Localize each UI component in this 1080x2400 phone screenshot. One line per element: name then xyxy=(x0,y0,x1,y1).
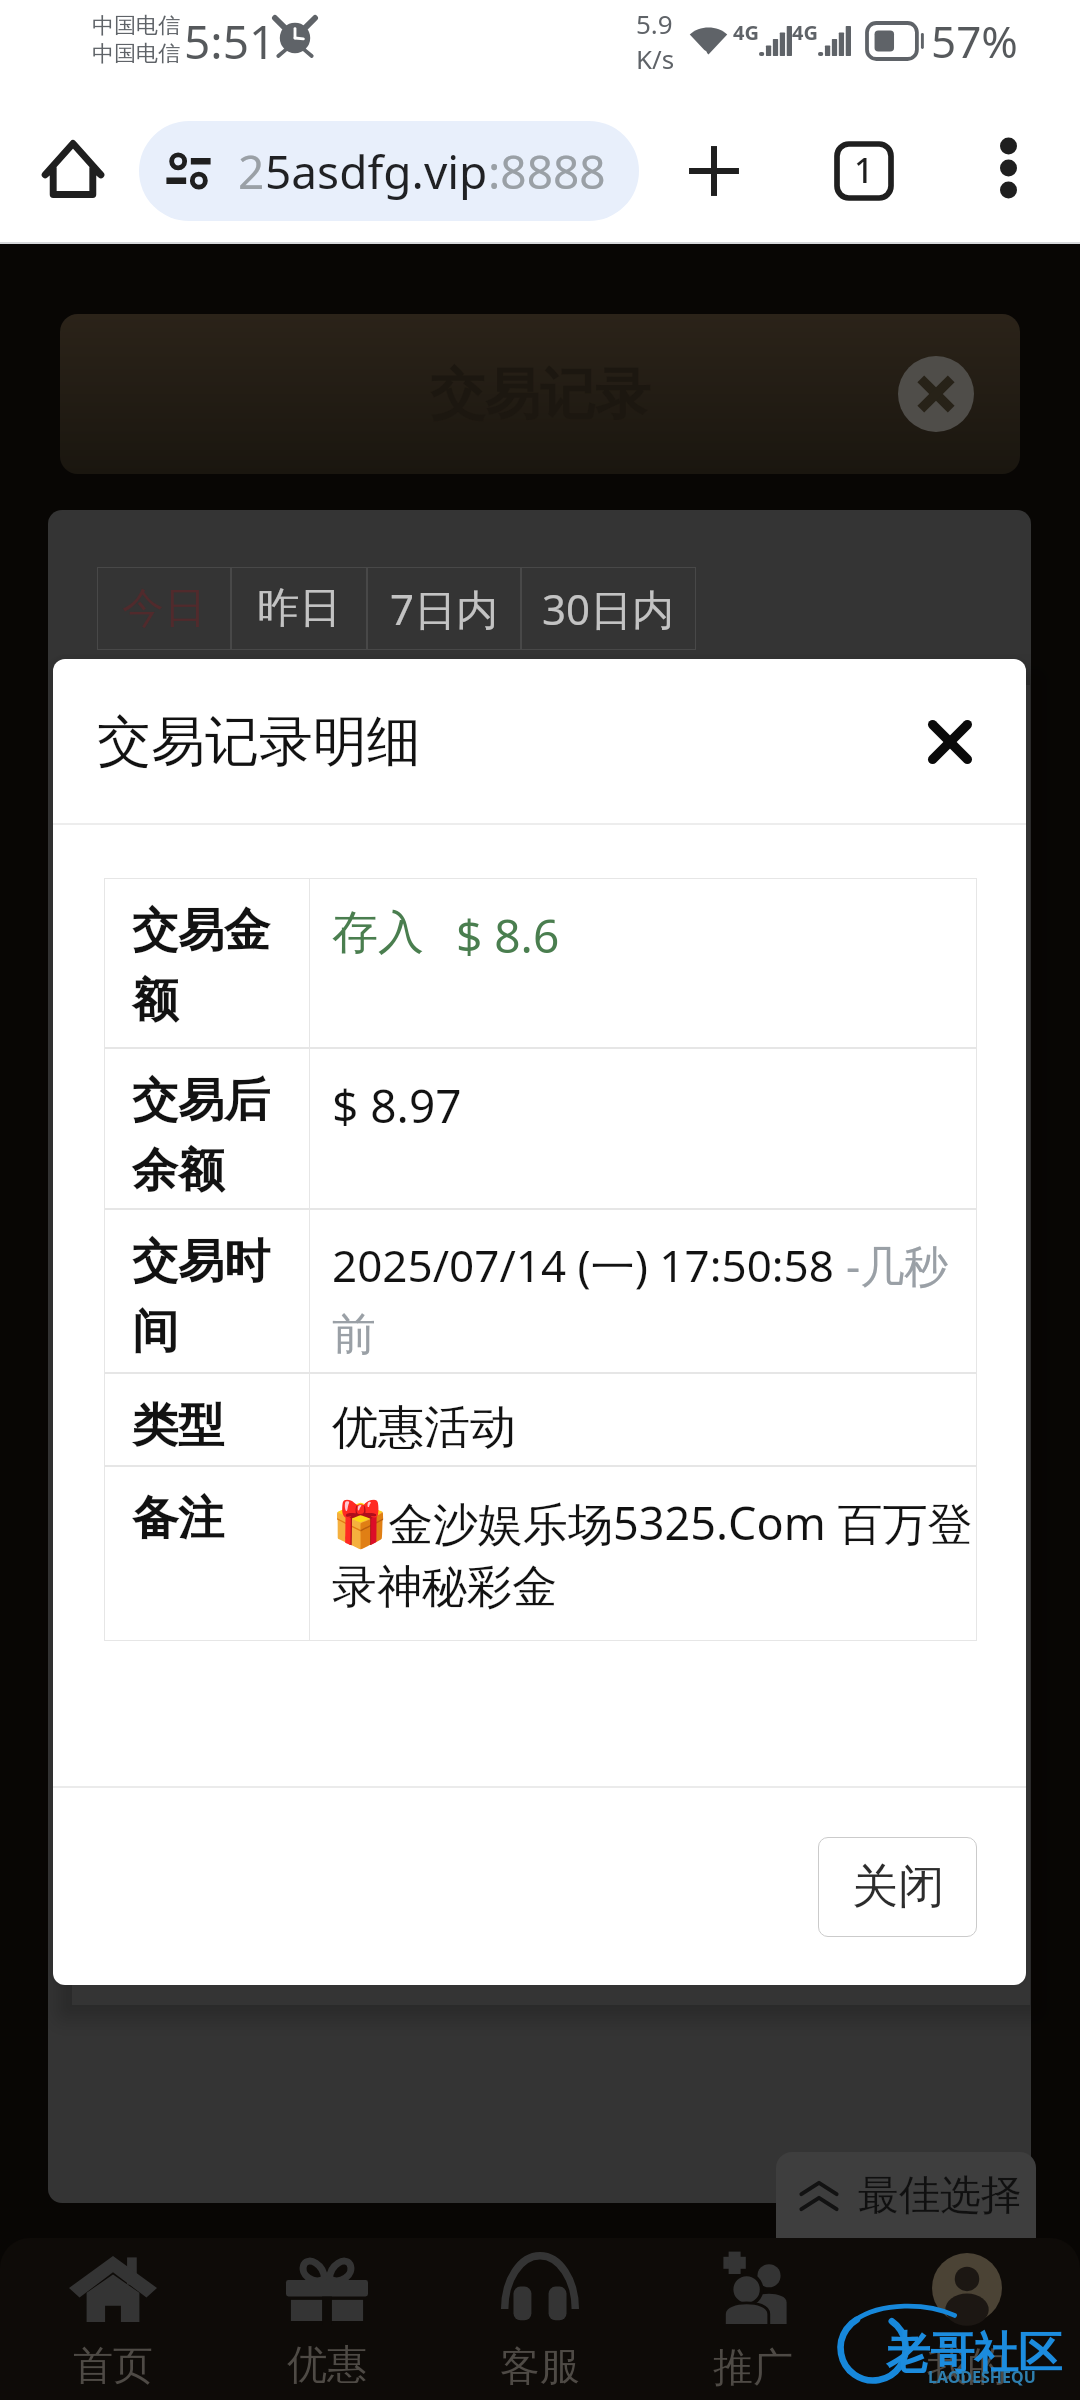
button[interactable]: New tab xyxy=(671,128,757,214)
staticText: 优惠 xyxy=(287,2339,367,2389)
staticText: 交易后余额 xyxy=(132,1072,302,1200)
staticText: 备注 xyxy=(132,1490,224,1548)
button[interactable]: 客服 xyxy=(440,2238,640,2400)
staticText: 推广 xyxy=(713,2342,793,2392)
staticText: 优惠活动 xyxy=(332,1399,516,1457)
staticText: $ 8.6 xyxy=(456,904,560,967)
button[interactable]: 我的 xyxy=(867,2238,1067,2400)
staticText: 关闭 xyxy=(852,1858,944,1916)
staticText: 前 xyxy=(332,1307,376,1362)
staticText: 4G xyxy=(792,19,818,46)
button[interactable]: Close dialog xyxy=(916,708,984,776)
staticText: :8888 xyxy=(488,140,606,203)
button[interactable]: 推广 xyxy=(653,2238,853,2400)
staticText: 5:51 xyxy=(184,10,276,73)
staticText: 30日内 xyxy=(542,580,675,637)
staticText: 最佳选择 xyxy=(858,2170,1022,2222)
staticText: 昨日 xyxy=(257,582,341,635)
staticText: 交易记录明细 xyxy=(97,708,421,776)
staticText: 🎁金沙娱乐场5325.Com 百万登录神秘彩金 xyxy=(332,1492,977,1616)
staticText: 我的 xyxy=(927,2341,1007,2391)
staticText: -几秒 xyxy=(846,1235,949,1295)
staticText: 57% xyxy=(931,11,1018,71)
staticText: $ 8.97 xyxy=(332,1074,462,1137)
staticText: K/s xyxy=(636,41,675,76)
button[interactable]: 优惠 xyxy=(227,2238,427,2400)
staticText: LAODESHEQU xyxy=(928,2366,1036,2388)
button[interactable]: 首页 xyxy=(13,2238,213,2400)
button[interactable]: Close xyxy=(898,356,974,432)
staticText: 中国电信 xyxy=(92,12,180,40)
staticText: 客服 xyxy=(500,2341,580,2391)
staticText: 存入 xyxy=(332,904,424,962)
button[interactable]: Tabs xyxy=(821,128,907,214)
staticText: 类型 xyxy=(132,1397,224,1455)
staticText: 1 xyxy=(854,147,874,193)
staticText: 交易金额 xyxy=(132,902,302,1030)
button[interactable]: Home xyxy=(31,126,115,212)
staticText: 交易记录 xyxy=(430,360,650,429)
staticText: 4G xyxy=(733,19,759,46)
staticText: 首页 xyxy=(73,2340,153,2390)
staticText: 7日内 xyxy=(390,580,499,637)
button[interactable]: 最佳选择 xyxy=(776,2152,1036,2240)
button[interactable]: 关闭 xyxy=(818,1837,977,1937)
button[interactable]: 30日内 xyxy=(521,567,696,650)
button[interactable]: 7日内 xyxy=(367,567,521,650)
staticText: 2025/07/14 (一) 17:50:58 xyxy=(332,1235,846,1295)
staticText: 中国电信 xyxy=(92,40,180,68)
button[interactable]: More options xyxy=(968,128,1048,208)
button[interactable]: 昨日 xyxy=(231,567,367,650)
staticText: 交易时间 xyxy=(132,1233,302,1361)
staticText: 老哥社区 xyxy=(886,2326,1062,2381)
staticText: 今日 xyxy=(122,582,206,635)
staticText: 5.9 xyxy=(636,6,673,41)
button[interactable]: 2 xyxy=(139,121,639,221)
staticText: 2 xyxy=(238,140,265,203)
staticText: 5asdfg.vip xyxy=(265,140,488,203)
button[interactable]: 今日 xyxy=(97,567,231,650)
